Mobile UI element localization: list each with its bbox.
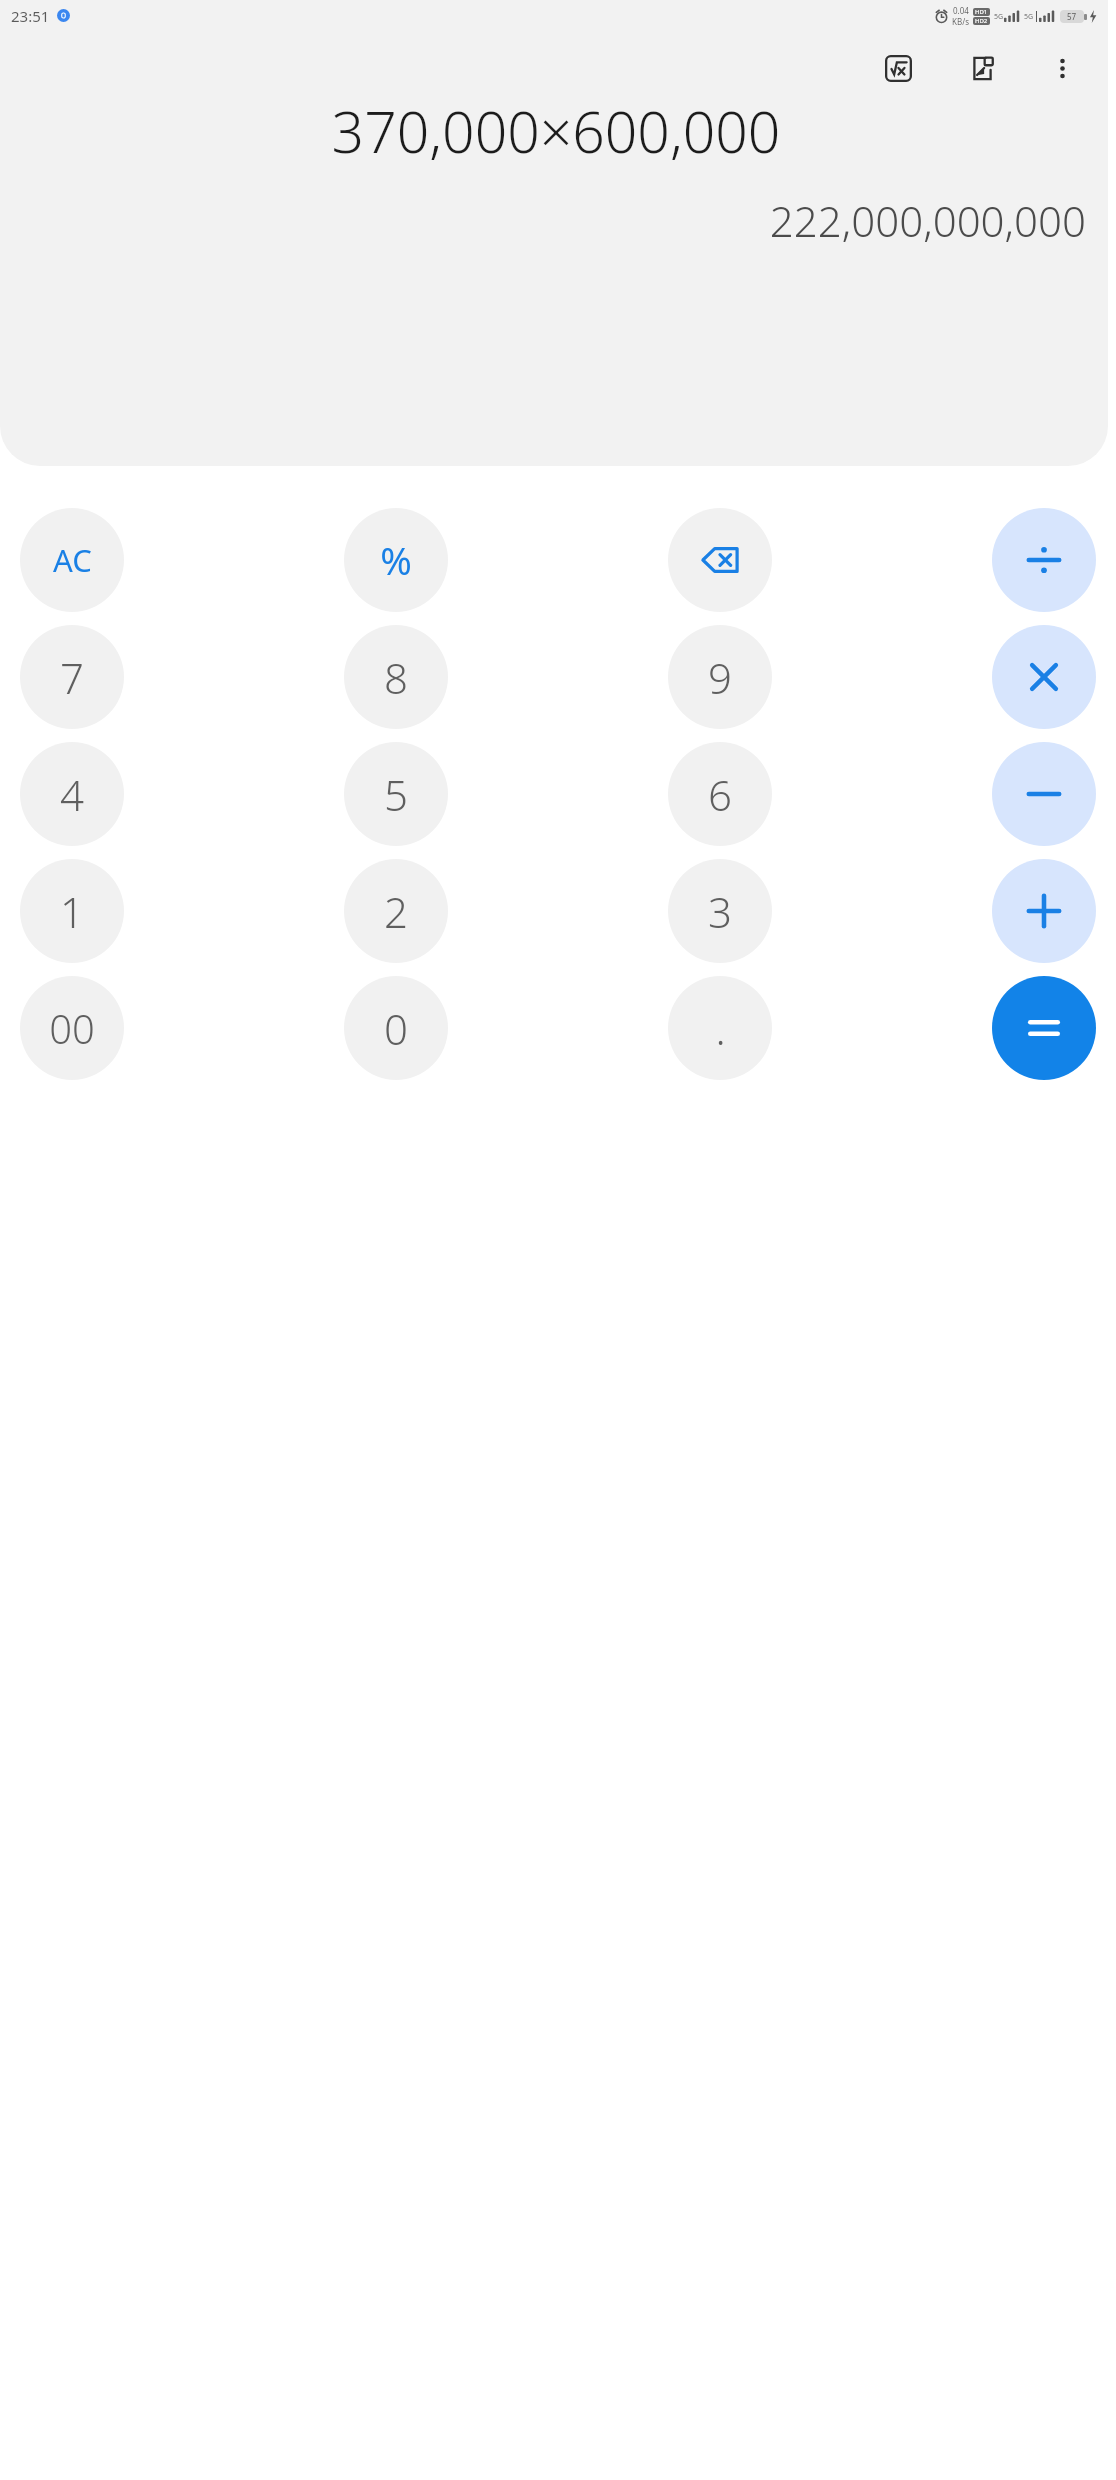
staticText: . [715,1000,726,1057]
button[interactable]: Backspace [668,508,772,612]
button[interactable]: Minus [992,742,1096,846]
staticText: AC [53,539,92,581]
staticText: 0 [384,1000,408,1057]
staticText: HD2 [975,17,988,25]
button[interactable]: More options [1034,40,1090,96]
button[interactable]: 5 [344,742,448,846]
button[interactable]: 8 [344,625,448,729]
staticText: 1 [60,883,84,940]
staticText: % [380,534,412,586]
button[interactable]: Plus [992,859,1096,963]
button[interactable]: 00 [20,976,124,1080]
button[interactable]: Multiply [992,625,1096,729]
button[interactable]: Divide [992,508,1096,612]
staticText: 7 [60,649,84,706]
button[interactable]: 3 [668,859,772,963]
staticText: 00 [49,1001,95,1055]
staticText: 8 [384,649,408,706]
button[interactable]: 6 [668,742,772,846]
staticText: 5 [384,766,408,823]
staticText: 370,000×600,000 [26,92,1086,170]
button[interactable]: 4 [20,742,124,846]
button[interactable]: Equals [992,976,1096,1080]
staticText: 23:51 [11,6,50,26]
button[interactable]: 1 [20,859,124,963]
staticText: KB/s [952,16,969,27]
button[interactable]: % [344,508,448,612]
button[interactable]: Floating window [954,40,1010,96]
button[interactable]: . [668,976,772,1080]
staticText: HD1 [975,8,988,16]
button[interactable]: Scientific calculator [870,40,926,96]
staticText: 9 [708,649,732,706]
staticText: 4 [60,766,84,823]
button[interactable]: 7 [20,625,124,729]
staticText: 5G [994,12,1004,22]
staticText: 222,000,000,000 [26,192,1086,249]
staticText: 57 [1067,11,1077,22]
staticText: 6 [708,766,732,823]
staticText: 2 [384,883,408,940]
staticText: 5G [1024,12,1034,22]
button[interactable]: 9 [668,625,772,729]
staticText: 3 [708,883,732,940]
staticText: 0.04 [953,5,969,16]
button[interactable]: 0 [344,976,448,1080]
button[interactable]: AC [20,508,124,612]
button[interactable]: 2 [344,859,448,963]
